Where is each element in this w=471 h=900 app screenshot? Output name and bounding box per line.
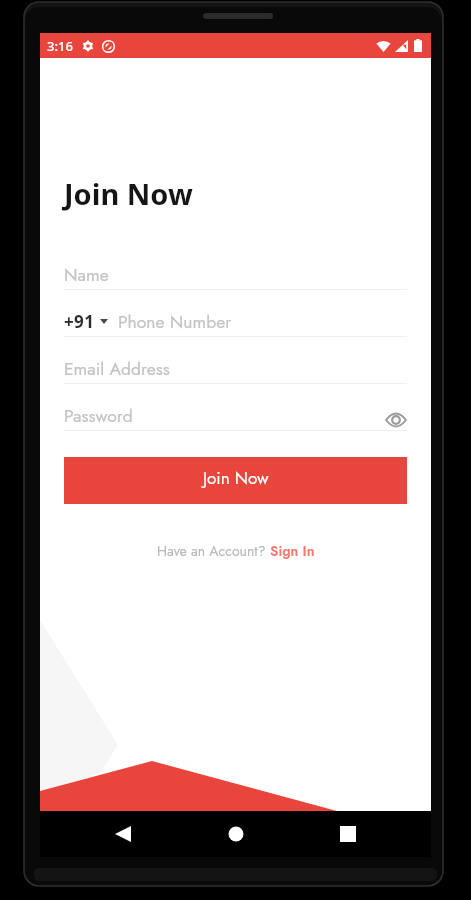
button[interactable]: +91: [64, 310, 108, 333]
button[interactable]: Email Address: [64, 353, 407, 384]
staticText: Have an Account?: [157, 541, 270, 561]
staticText: Join Now: [64, 174, 193, 213]
staticText: 3:16: [47, 37, 73, 55]
staticText: Sign In: [270, 541, 315, 561]
other: Show password: [385, 412, 407, 428]
button[interactable]: Recents: [330, 816, 366, 852]
button[interactable]: Password: [64, 400, 407, 431]
staticText: +91: [64, 310, 95, 333]
staticText: Phone Number: [118, 309, 232, 334]
staticText: Password: [64, 403, 133, 428]
staticText: Join Now: [203, 466, 269, 491]
staticText: Email Address: [64, 356, 170, 381]
button[interactable]: Name: [64, 259, 407, 290]
button[interactable]: Have an Account?: [64, 541, 407, 561]
button[interactable]: Home: [218, 816, 254, 852]
button[interactable]: Back: [105, 816, 141, 852]
staticText: Name: [64, 262, 109, 287]
button[interactable]: Join Now: [64, 457, 407, 504]
